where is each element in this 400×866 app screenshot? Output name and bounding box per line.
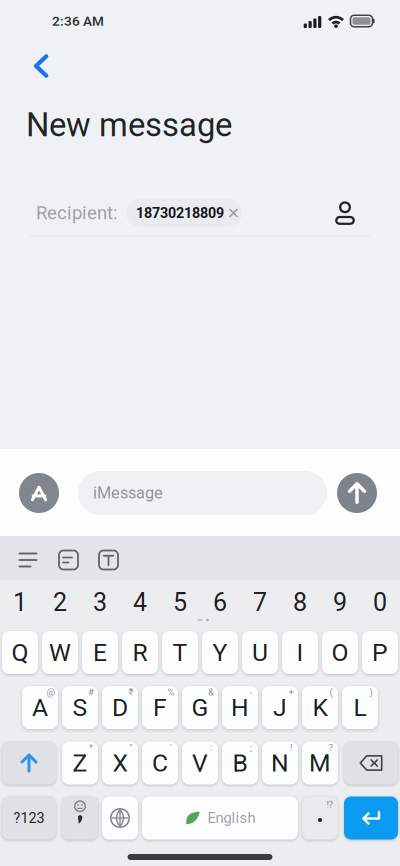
staticText: W [49,638,71,667]
staticText: G [191,693,208,722]
button[interactable]: Back [20,41,62,90]
button[interactable]: 3 [82,584,118,620]
staticText: ; [250,742,252,753]
button[interactable]: 2 [42,584,78,620]
staticText: * [89,742,93,753]
staticText: H [231,693,249,722]
staticText: English [207,809,255,827]
staticText: C [152,748,168,777]
button[interactable]: Shift [2,741,56,784]
staticText: Recipient: [36,202,117,224]
staticText: D [112,693,128,722]
button[interactable]: U [242,631,278,674]
button[interactable]: 0 [362,584,398,620]
button[interactable]: P [362,631,398,674]
staticText: O [331,638,348,667]
button[interactable]: 7 [242,584,278,620]
button[interactable]: L [342,686,378,729]
button[interactable]: B [222,741,258,784]
button[interactable]: Period [302,796,338,839]
button[interactable]: Return [344,796,398,839]
staticText: 2 [53,588,67,617]
staticText: ' [170,742,172,753]
button[interactable]: F [142,686,178,729]
button[interactable]: Space [142,796,298,839]
button[interactable]: Q [2,631,38,674]
button[interactable]: V [182,741,218,784]
button[interactable]: 18730218809 [126,199,242,227]
button[interactable]: M [302,741,338,784]
staticText: : [210,742,212,753]
button[interactable]: 5 [162,584,198,620]
button[interactable]: I [282,631,318,674]
button[interactable]: K [302,686,338,729]
staticText: I [296,638,303,667]
button[interactable]: Y [202,631,238,674]
button[interactable]: Clipboard [11,544,44,575]
button[interactable]: H [222,686,258,729]
button[interactable]: G [182,686,218,729]
staticText: 1 [13,588,27,617]
staticText: E [93,638,107,667]
button[interactable]: iMessage text field [78,471,327,515]
staticText: L [353,693,366,722]
button[interactable]: Choose contact [328,195,362,231]
staticText: ?123 [13,810,44,826]
button[interactable]: Notes [53,544,84,575]
button[interactable]: iMessage apps [19,473,59,513]
button[interactable]: Delete [344,741,398,784]
staticText: % [167,687,174,698]
button[interactable]: Send [337,473,377,513]
staticText: 3 [93,588,107,617]
staticText: V [192,748,208,777]
staticText: A [32,693,48,722]
button[interactable]: Text format [93,544,124,575]
staticText: 2:36 AM [52,13,104,29]
button[interactable]: Comma [62,796,98,839]
staticText: New message [26,106,232,144]
staticText: # [88,687,94,698]
staticText: ) [369,687,372,698]
button[interactable]: N [262,741,298,784]
button[interactable]: Symbols [2,796,56,839]
button[interactable]: 4 [122,584,158,620]
staticText: ! [290,742,292,753]
button[interactable]: W [42,631,78,674]
staticText: !? [326,799,333,810]
button[interactable]: J [262,686,298,729]
staticText: & [208,687,214,698]
staticText: X [112,748,127,777]
staticText: U [252,638,268,667]
button[interactable]: 1 [2,584,38,620]
staticText: T [172,638,187,667]
button[interactable]: A [22,686,58,729]
staticText: J [273,693,287,722]
button[interactable]: X [102,741,138,784]
staticText: B [232,748,247,777]
button[interactable]: 9 [322,584,358,620]
staticText: 4 [133,588,147,617]
button[interactable]: 8 [282,584,318,620]
staticText: ₹ [128,687,133,698]
button[interactable]: R [122,631,158,674]
staticText: 9 [333,588,347,617]
staticText: @ [46,687,55,698]
button[interactable]: T [162,631,198,674]
button[interactable]: C [142,741,178,784]
staticText: 18730218809 [136,205,224,221]
staticText: iMessage [93,483,163,503]
staticText: F [153,693,167,722]
button[interactable]: Switch keyboard language [102,796,138,839]
button[interactable]: O [322,631,358,674]
button[interactable]: D [102,686,138,729]
button[interactable]: Z [62,741,98,784]
staticText: + [288,687,293,698]
staticText: ? [328,742,333,753]
button[interactable]: E [82,631,118,674]
staticText: 0 [373,588,387,617]
staticText: R [132,638,147,667]
button[interactable]: S [62,686,98,729]
button[interactable]: 6 [202,584,238,620]
staticText: Q [11,638,28,667]
staticText: K [312,693,327,722]
